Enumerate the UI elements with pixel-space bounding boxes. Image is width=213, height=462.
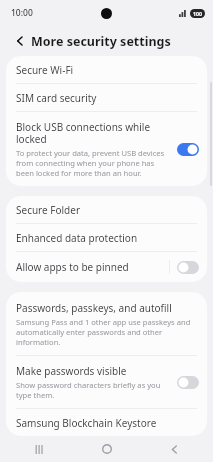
staticText: 10:00 (11, 7, 33, 19)
button[interactable]: Samsung Blockchain Keystore (6, 409, 207, 436)
button[interactable]: Back (163, 438, 185, 460)
button[interactable]: Passwords, passkeys, and autofill (6, 292, 207, 355)
button[interactable]: Recents (28, 438, 50, 460)
button[interactable]: Secure Folder (6, 196, 207, 223)
staticText: Show password characters briefly as you … (16, 380, 171, 400)
staticText: Samsung Pass and 1 other app use passkey… (16, 317, 197, 347)
button[interactable]: Off (177, 261, 199, 274)
button[interactable]: Enhanced data protection (6, 224, 207, 251)
staticText: To protect your data, prevent USB device… (16, 148, 171, 178)
button[interactable]: SIM card security (6, 84, 207, 111)
staticText: Enhanced data protection (16, 231, 138, 245)
staticText: Passwords, passkeys, and autofill (16, 301, 172, 315)
staticText: 100 (193, 10, 202, 17)
button[interactable]: Block USB connections while locked (6, 112, 207, 186)
button[interactable]: Home (96, 438, 118, 460)
button[interactable]: Back (8, 29, 32, 53)
staticText: SIM card security (16, 91, 97, 105)
staticText: Make passwords visible (16, 364, 127, 378)
button[interactable]: Secure Wi-Fi (6, 56, 207, 83)
button[interactable]: Allow apps to be pinned (6, 252, 207, 282)
button[interactable]: Make passwords visible (6, 356, 207, 408)
staticText: Samsung Blockchain Keystore (16, 416, 157, 430)
button[interactable]: On (177, 143, 199, 156)
button[interactable]: Off (177, 376, 199, 389)
staticText: Block USB connections while locked (16, 120, 171, 146)
staticText: Allow apps to be pinned (16, 260, 129, 274)
staticText: Secure Wi-Fi (16, 63, 74, 77)
staticText: More security settings (31, 33, 171, 50)
staticText: Secure Folder (16, 203, 81, 217)
